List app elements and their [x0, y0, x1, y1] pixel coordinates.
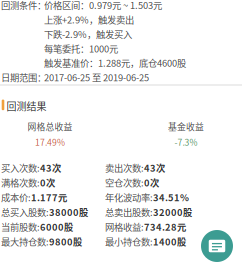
staticText: 32000股 — [153, 205, 192, 219]
staticText: 价格区间：0.979元 ~ 1.503元 — [44, 0, 162, 12]
staticText: 38000股 — [49, 205, 88, 219]
staticText: 43次 — [144, 161, 165, 174]
staticText: 2017-06-25 至 2019-06-25 — [44, 70, 149, 84]
staticText: 最小持仓数: — [105, 235, 153, 248]
staticText: 当前股数: — [1, 220, 40, 233]
staticText: 成本价: — [1, 190, 31, 204]
staticText: 年化波动率: — [105, 190, 153, 204]
staticText: 9800股 — [49, 235, 82, 248]
button[interactable]: Customer service — [201, 230, 233, 262]
staticText: 1.177元 — [31, 190, 67, 204]
staticText: 34.51% — [153, 190, 189, 204]
staticText: 734.28元 — [144, 220, 186, 233]
staticText: 0次 — [40, 176, 55, 189]
staticText: 网格总收益 — [27, 120, 72, 133]
staticText: 总买入股数: — [1, 205, 49, 219]
staticText: 卖出次数: — [105, 161, 144, 174]
staticText: 网格收益: — [105, 220, 144, 233]
staticText: 6000股 — [40, 220, 73, 233]
staticText: 满格次数: — [1, 176, 40, 189]
staticText: 基金收益 — [168, 120, 204, 133]
staticText: 最大持仓数: — [1, 235, 49, 248]
staticText: 总卖出股数: — [105, 205, 153, 219]
staticText: 回测条件： — [1, 0, 46, 12]
staticText: 触发基准价：1.288元，底仓4600股 — [44, 56, 186, 69]
staticText: 日期范围： — [1, 70, 46, 84]
staticText: 下跌-2.9%，触发买入 — [44, 27, 132, 41]
staticText: 0次 — [144, 176, 159, 189]
staticText: 43次 — [40, 161, 61, 174]
staticText: 每笔委托：1000元 — [44, 41, 118, 55]
staticText: 空仓次数: — [105, 176, 144, 189]
staticText: 17.49% — [35, 136, 65, 148]
staticText: 1400股 — [153, 235, 186, 248]
staticText: 上涨+2.9%，触发卖出 — [44, 13, 134, 26]
staticText: -7.3% — [174, 136, 197, 148]
staticText: 买入次数: — [1, 161, 40, 174]
staticText: 回测结果 — [7, 99, 47, 113]
